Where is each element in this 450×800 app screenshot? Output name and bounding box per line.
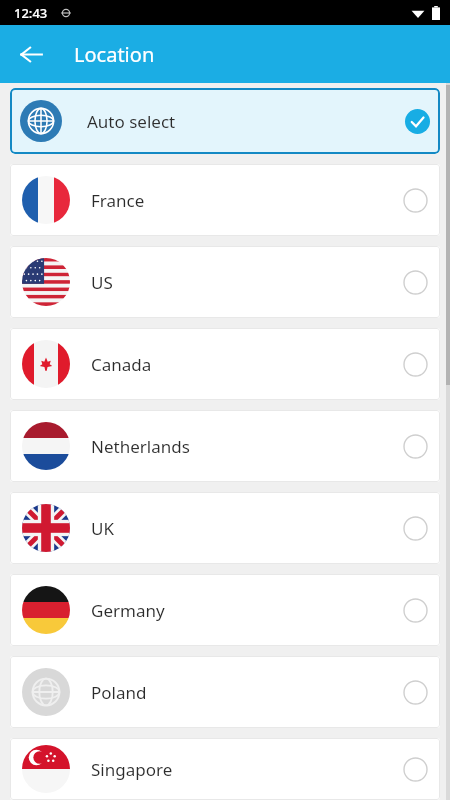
button[interactable]: Back (8, 31, 54, 77)
staticText: Germany (91, 599, 165, 622)
staticText: US (91, 271, 113, 294)
staticText: Canada (91, 353, 152, 376)
button[interactable]: Poland (10, 656, 440, 728)
staticText: Auto select (87, 110, 176, 133)
staticText: Singapore (91, 758, 173, 781)
button[interactable]: Netherlands (10, 410, 440, 482)
button[interactable]: Singapore (10, 738, 440, 800)
staticText: France (91, 189, 145, 212)
button[interactable]: France (10, 164, 440, 236)
button[interactable]: Canada (10, 328, 440, 400)
staticText: 12:43 (14, 4, 48, 22)
button[interactable]: Germany (10, 574, 440, 646)
button[interactable]: US (10, 246, 440, 318)
staticText: Poland (91, 681, 147, 704)
button[interactable]: UK (10, 492, 440, 564)
staticText: Location (74, 41, 155, 68)
staticText: UK (91, 517, 114, 540)
button[interactable]: Auto select (10, 88, 440, 154)
staticText: Netherlands (91, 435, 190, 458)
